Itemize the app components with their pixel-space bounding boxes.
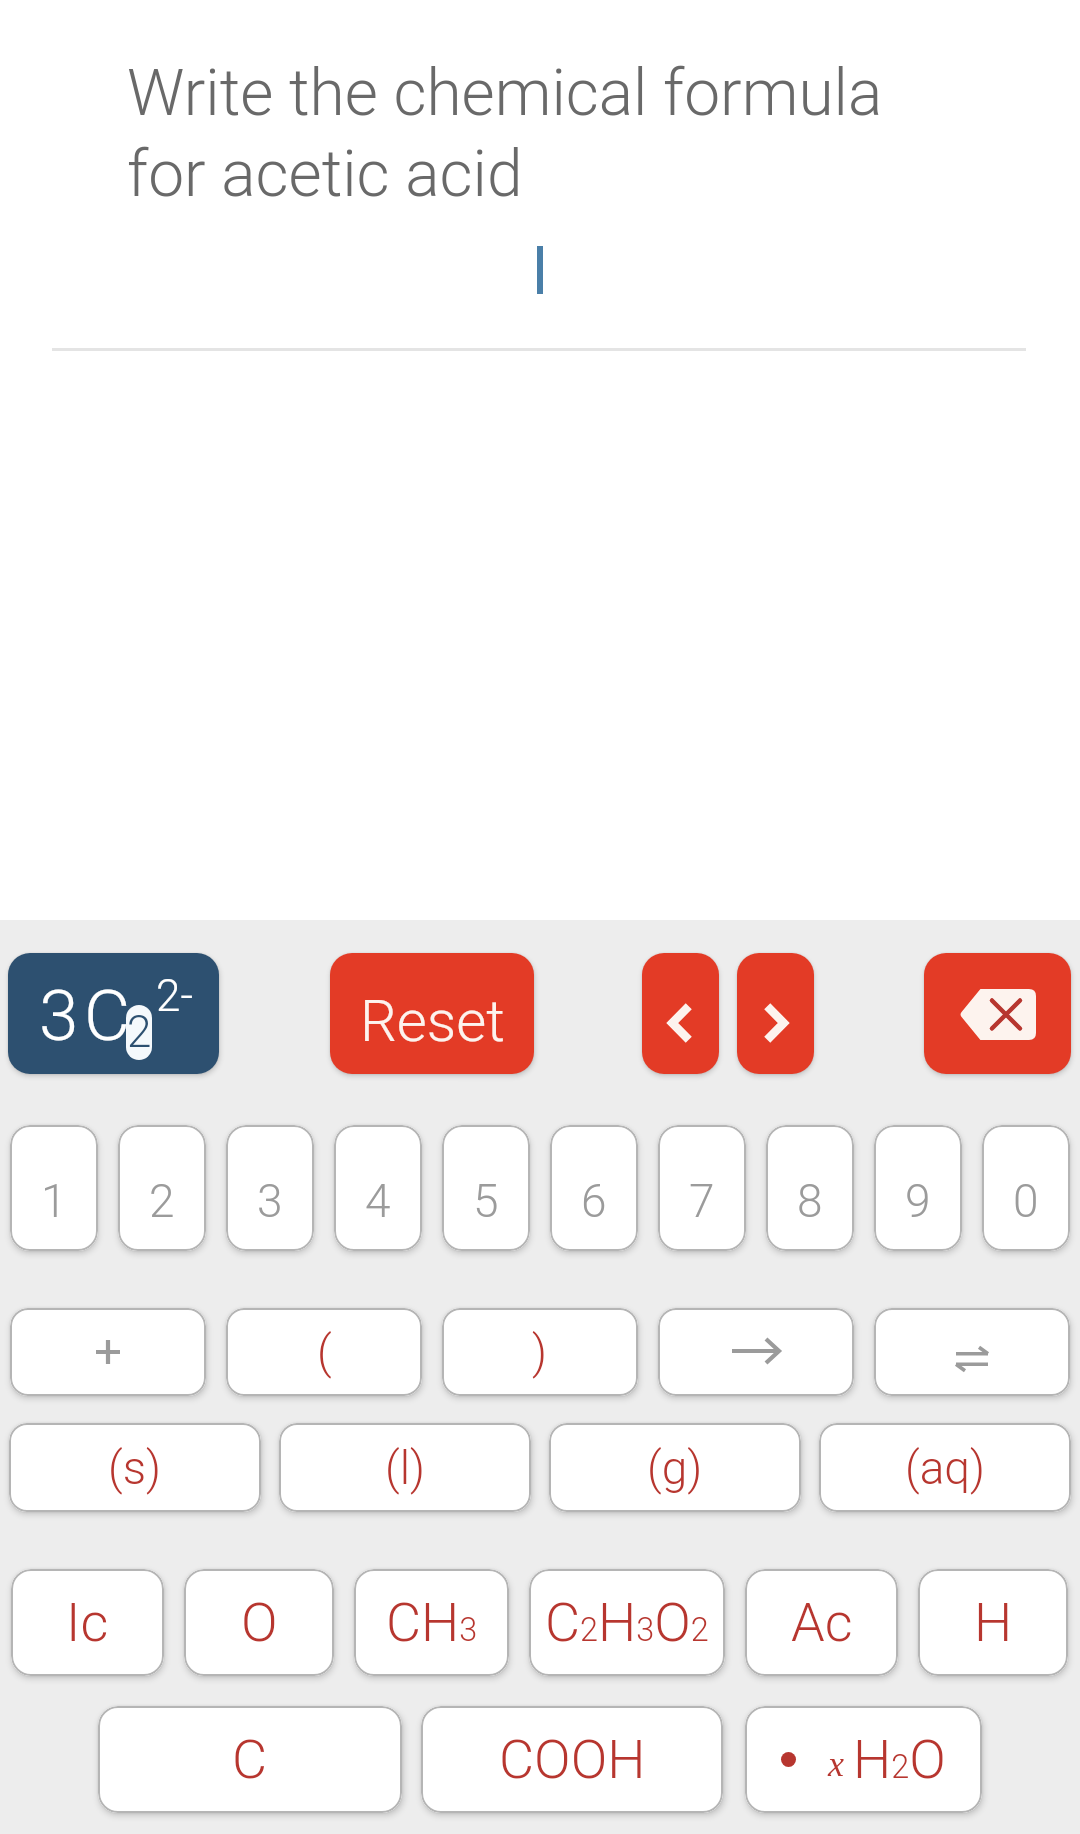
staticText: C2H3O2 (545, 1591, 709, 1654)
button[interactable]: 0 (982, 1125, 1070, 1251)
button[interactable]: x (745, 1706, 982, 1813)
staticText: (aq) (905, 1441, 986, 1495)
staticText: 3 (39, 974, 79, 1057)
button[interactable]: 8 (766, 1125, 854, 1251)
button[interactable]: ( (226, 1308, 422, 1396)
staticText: Ic (66, 1591, 109, 1654)
button[interactable] (658, 1308, 854, 1396)
button[interactable]: Backspace (924, 953, 1071, 1074)
button[interactable] (10, 1308, 206, 1396)
staticText: (g) (647, 1441, 703, 1495)
staticText: (s) (108, 1441, 162, 1495)
staticText: Reset (360, 987, 505, 1055)
button[interactable]: 2 (118, 1125, 206, 1251)
button[interactable]: 6 (550, 1125, 638, 1251)
button[interactable]: 3 (8, 953, 219, 1074)
button[interactable]: Ac (745, 1569, 898, 1676)
button[interactable] (874, 1308, 1070, 1396)
button[interactable]: (l) (279, 1423, 531, 1512)
staticText: 5 (473, 1174, 499, 1228)
button[interactable]: H (918, 1569, 1068, 1676)
staticText: 8 (797, 1174, 823, 1228)
button[interactable]: 5 (442, 1125, 530, 1251)
button[interactable]: ) (442, 1308, 638, 1396)
button[interactable]: (s) (9, 1423, 261, 1512)
staticText: Write the chemical formula for acetic ac… (127, 56, 910, 212)
staticText: 0 (1013, 1174, 1039, 1228)
button[interactable]: Move cursor right (737, 953, 814, 1074)
button[interactable]: C2H3O2 (529, 1569, 725, 1676)
button[interactable]: 7 (658, 1125, 746, 1251)
staticText: (l) (385, 1441, 426, 1495)
staticText: H (974, 1591, 1013, 1654)
button[interactable]: Reset (330, 953, 534, 1074)
button[interactable]: (aq) (819, 1423, 1071, 1512)
button[interactable]: Ic (11, 1569, 164, 1676)
staticText: H2O (853, 1728, 946, 1791)
staticText: ) (532, 1325, 548, 1379)
staticText: 9 (905, 1174, 931, 1228)
staticText: Ac (791, 1591, 853, 1654)
button[interactable]: CH3 (354, 1569, 509, 1676)
button[interactable]: COOH (421, 1706, 723, 1813)
staticText: CH3 (386, 1591, 478, 1654)
staticText: ( (317, 1325, 332, 1379)
button[interactable]: C (98, 1706, 402, 1813)
staticText: 1 (41, 1174, 67, 1228)
button[interactable]: (g) (549, 1423, 801, 1512)
staticText: 4 (365, 1174, 391, 1228)
staticText: C (84, 974, 131, 1057)
staticText: O (241, 1591, 278, 1654)
staticText: 3 (257, 1174, 283, 1228)
staticText: 2- (156, 970, 193, 1022)
staticText: C (232, 1728, 268, 1791)
button[interactable]: O (184, 1569, 334, 1676)
staticText: 7 (689, 1174, 715, 1228)
staticText: 2 (149, 1174, 175, 1228)
staticText: 6 (581, 1174, 607, 1228)
staticText: x (828, 1744, 844, 1784)
button[interactable]: 3 (226, 1125, 314, 1251)
button[interactable]: 1 (10, 1125, 98, 1251)
staticText: COOH (499, 1728, 646, 1791)
button[interactable]: 4 (334, 1125, 422, 1251)
button[interactable]: 9 (874, 1125, 962, 1251)
button[interactable]: Move cursor left (642, 953, 719, 1074)
staticText: 2 (127, 1006, 152, 1058)
